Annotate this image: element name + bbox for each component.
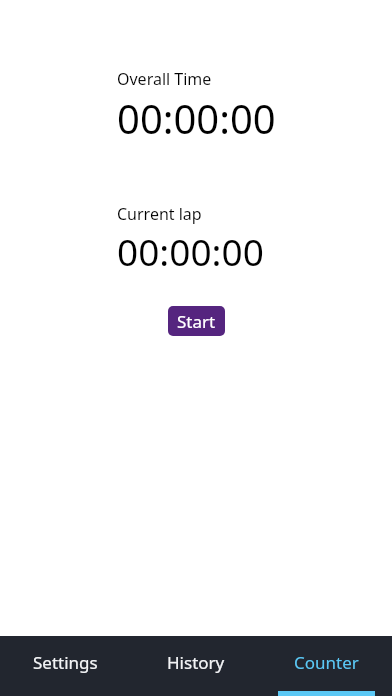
button[interactable]: Start [168, 306, 225, 336]
staticText: Overall Time [117, 68, 212, 90]
staticText: 00:00:00 [117, 226, 264, 276]
button[interactable]: Settings [0, 636, 130, 696]
staticText: Settings [33, 651, 98, 674]
button[interactable]: Counter [261, 636, 392, 696]
staticText: History [167, 651, 225, 674]
staticText: Counter [294, 651, 359, 674]
staticText: Current lap [117, 203, 202, 225]
staticText: Start [177, 310, 216, 333]
button[interactable]: History [130, 636, 261, 696]
staticText: 00:00:00 [117, 91, 276, 145]
